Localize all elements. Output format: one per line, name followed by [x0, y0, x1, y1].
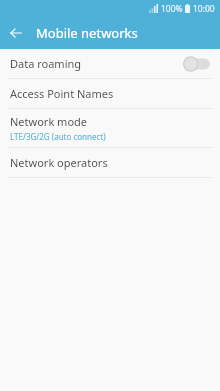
button[interactable]: Navigate up [0, 17, 32, 49]
button[interactable]: Data roaming [0, 49, 220, 78]
staticText: 10:00 [193, 3, 215, 15]
staticText: Access Point Names [10, 86, 114, 101]
staticText: Mobile networks [36, 24, 138, 42]
staticText: LTE/3G/2G (auto connect) [10, 131, 106, 142]
button[interactable]: Network operators [0, 148, 220, 177]
staticText: Network mode [10, 114, 88, 129]
button[interactable]: Access Point Names [0, 79, 220, 108]
staticText: 100% [161, 3, 183, 15]
staticText: Data roaming [10, 56, 182, 71]
button[interactable]: Network mode [0, 109, 220, 147]
staticText: Network operators [10, 155, 108, 170]
button[interactable]: Data roaming toggle [182, 55, 210, 73]
